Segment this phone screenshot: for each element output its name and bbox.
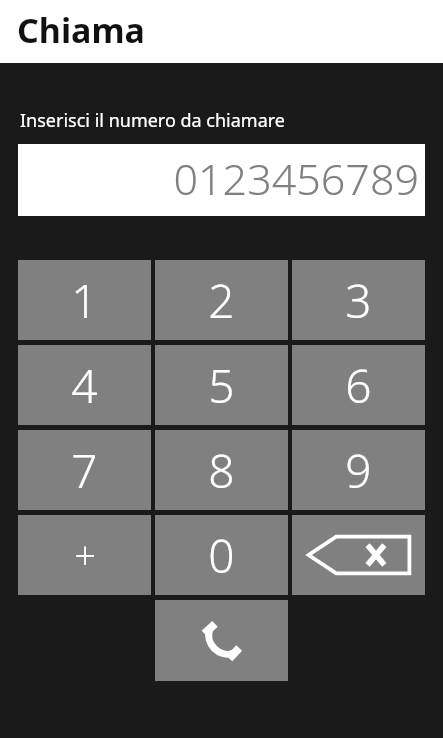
- button[interactable]: 3: [292, 260, 425, 340]
- button[interactable]: +: [18, 515, 151, 595]
- button[interactable]: 0: [155, 515, 288, 595]
- staticText: 6: [345, 354, 372, 417]
- button[interactable]: Backspace: [292, 515, 425, 595]
- staticText: 7: [71, 439, 98, 502]
- staticText: 0: [208, 524, 235, 587]
- staticText: 1: [71, 269, 98, 332]
- staticText: 9: [345, 439, 372, 502]
- staticText: 5: [208, 354, 235, 417]
- button[interactable]: 1: [18, 260, 151, 340]
- button[interactable]: 5: [155, 345, 288, 425]
- button[interactable]: 9: [292, 430, 425, 510]
- staticText: +: [74, 529, 96, 581]
- staticText: Inserisci il numero da chiamare: [20, 108, 286, 133]
- staticText: Chiama: [17, 7, 145, 53]
- button[interactable]: 6: [292, 345, 425, 425]
- button[interactable]: 0123456789: [18, 144, 425, 216]
- staticText: 0123456789: [173, 149, 419, 208]
- button[interactable]: 8: [155, 430, 288, 510]
- staticText: 2: [208, 269, 235, 332]
- staticText: 4: [71, 354, 98, 417]
- button[interactable]: 7: [18, 430, 151, 510]
- button[interactable]: 2: [155, 260, 288, 340]
- button[interactable]: Call: [155, 600, 288, 681]
- staticText: 3: [345, 269, 372, 332]
- staticText: 8: [208, 439, 235, 502]
- button[interactable]: 4: [18, 345, 151, 425]
